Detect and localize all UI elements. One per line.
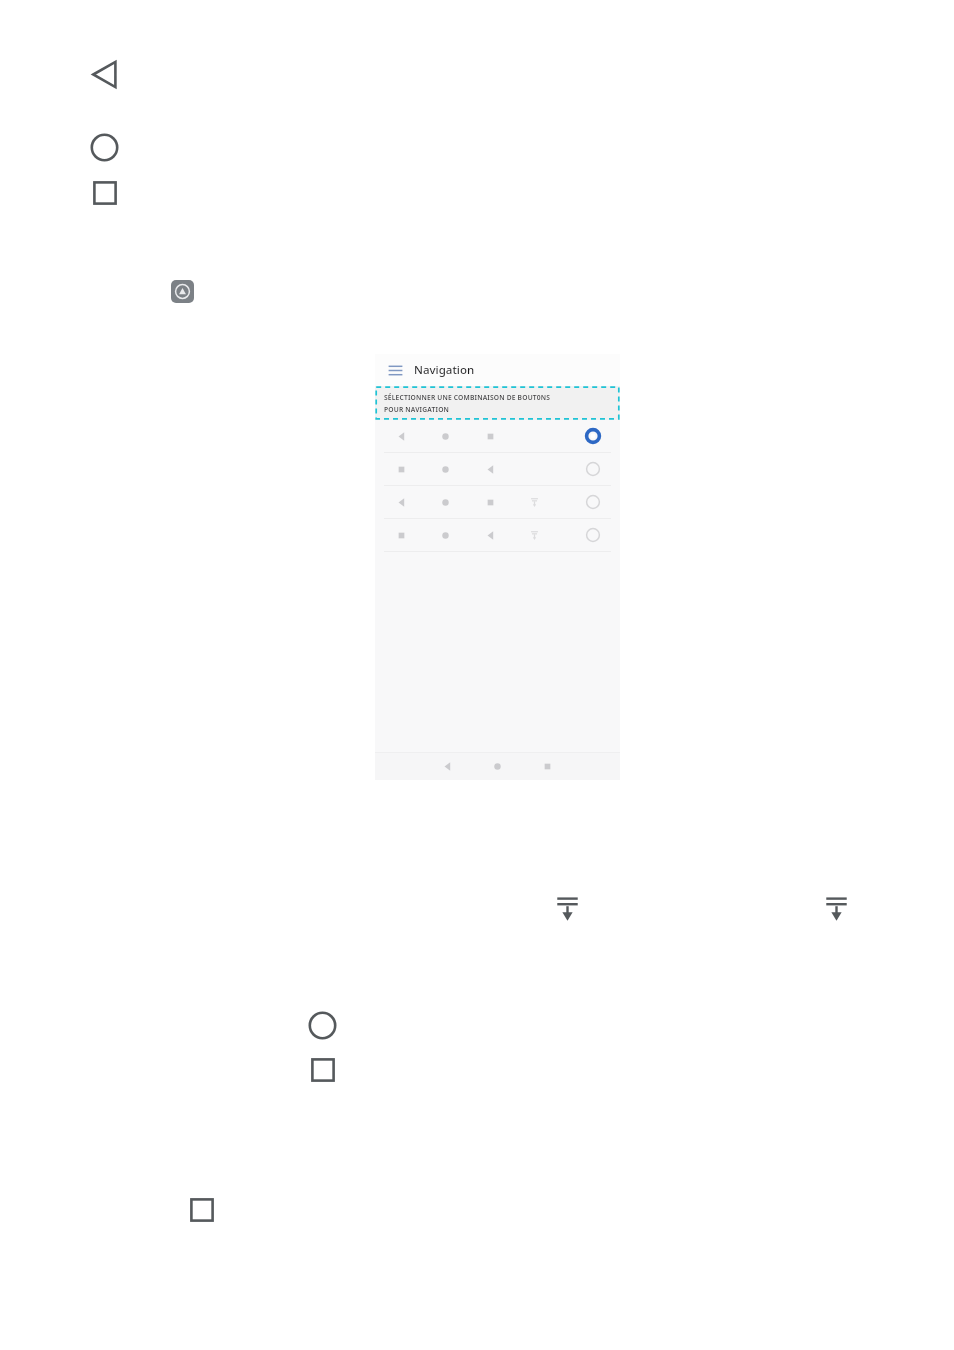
button[interactable]: Option <box>585 527 601 543</box>
button[interactable]: Menu <box>388 363 403 378</box>
button[interactable]: Home <box>308 1011 337 1040</box>
staticText: POUR NAVIGATION <box>384 405 450 414</box>
button[interactable]: Pull down notification panel <box>551 893 584 926</box>
button[interactable]: Recents <box>310 1057 336 1083</box>
staticText: Navigation <box>414 362 475 378</box>
button[interactable]: Option <box>375 453 620 485</box>
staticText: SÉLECTIONNER UNE COMBINAISON DE BOUT0NS <box>384 393 551 402</box>
button[interactable]: Option <box>375 519 620 551</box>
button[interactable]: Option selected <box>375 420 620 452</box>
button[interactable]: Option <box>375 486 620 518</box>
button[interactable]: Option <box>585 494 601 510</box>
button[interactable]: Option <box>585 461 601 477</box>
button[interactable]: Recents <box>92 180 118 206</box>
button[interactable]: Home <box>90 133 119 162</box>
button[interactable]: Option selected <box>585 428 601 444</box>
button[interactable]: Back <box>89 58 122 91</box>
button[interactable]: Recents <box>189 1197 215 1223</box>
button[interactable]: Navigation button shortcut <box>171 280 194 303</box>
button[interactable]: Pull down notification panel <box>820 893 853 926</box>
